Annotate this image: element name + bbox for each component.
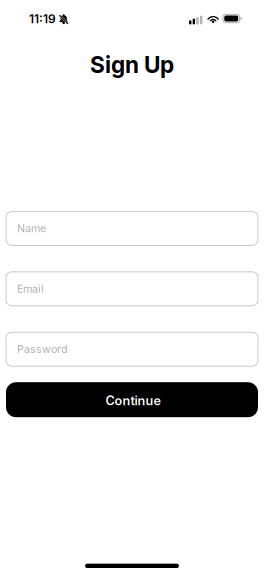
button[interactable]: Name xyxy=(6,211,258,245)
staticText: 11:19 xyxy=(29,12,56,26)
button[interactable]: Continue xyxy=(6,382,258,417)
button[interactable]: Email xyxy=(6,272,258,306)
staticText: Name xyxy=(17,222,46,235)
staticText: Sign Up xyxy=(90,51,174,78)
button[interactable]: Password xyxy=(6,332,258,366)
staticText: Email xyxy=(17,282,44,295)
staticText: Continue xyxy=(105,393,160,408)
staticText: Password xyxy=(17,343,68,356)
